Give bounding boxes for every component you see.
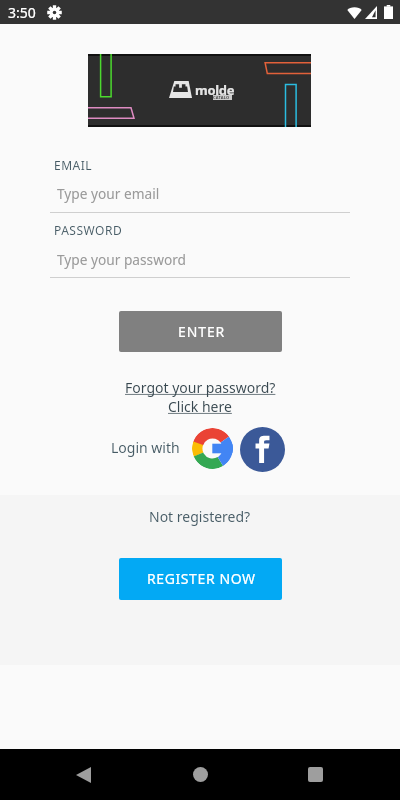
button[interactable]: Login with Facebook — [240, 427, 285, 472]
button[interactable]: Type your email — [50, 179, 350, 207]
staticText: Type your email — [57, 184, 160, 203]
staticText: Not registered? — [149, 507, 251, 526]
staticText: molde — [195, 81, 235, 99]
button[interactable]: Login with Google — [192, 428, 233, 469]
staticText: Click here — [168, 397, 232, 416]
button[interactable]: Recent apps — [291, 749, 339, 800]
staticText: 3:50 — [8, 3, 36, 22]
button[interactable]: REGISTER NOW — [119, 558, 282, 600]
staticText: ENTER — [178, 322, 226, 341]
button[interactable]: Forgot your password? — [0, 378, 400, 416]
staticText: Login with — [111, 438, 180, 457]
staticText: EMAIL — [54, 157, 93, 173]
button[interactable]: Type your password — [50, 245, 350, 273]
staticText: REGISTER NOW — [147, 569, 256, 588]
button[interactable]: Home — [176, 749, 224, 800]
button[interactable]: Back — [59, 749, 107, 800]
staticText: Forgot your password? — [125, 378, 276, 397]
button[interactable]: ENTER — [119, 311, 282, 352]
staticText: CATALOG — [213, 95, 232, 100]
staticText: Type your password — [57, 250, 186, 269]
staticText: PASSWORD — [54, 222, 123, 238]
